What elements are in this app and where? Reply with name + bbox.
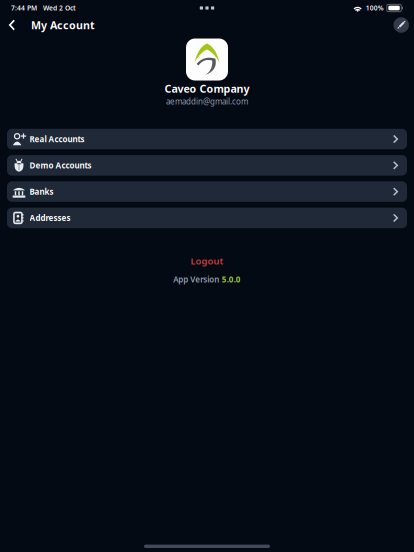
- button[interactable]: Real Accounts: [7, 129, 407, 149]
- button[interactable]: Logout: [182, 252, 231, 270]
- button[interactable]: Back: [4, 15, 20, 34]
- staticText: Caveo Company: [164, 81, 249, 96]
- staticText: My Account: [31, 18, 95, 32]
- staticText: 7:44 PM: [11, 4, 37, 12]
- staticText: 5.0.0: [222, 274, 241, 285]
- staticText: 100%: [366, 4, 384, 12]
- button[interactable]: Banks: [7, 181, 407, 202]
- button[interactable]: Demo Accounts: [7, 155, 407, 176]
- button[interactable]: Edit profile: [393, 17, 409, 33]
- staticText: App Version: [173, 274, 219, 285]
- staticText: Addresses: [29, 213, 70, 223]
- button[interactable]: Addresses: [7, 208, 407, 228]
- staticText: Banks: [29, 186, 53, 197]
- staticText: Real Accounts: [29, 134, 84, 144]
- staticText: aemaddin@gmail.com: [166, 96, 248, 107]
- staticText: Logout: [190, 255, 223, 267]
- staticText: Wed 2 Oct: [43, 4, 76, 12]
- staticText: Demo Accounts: [29, 160, 91, 171]
